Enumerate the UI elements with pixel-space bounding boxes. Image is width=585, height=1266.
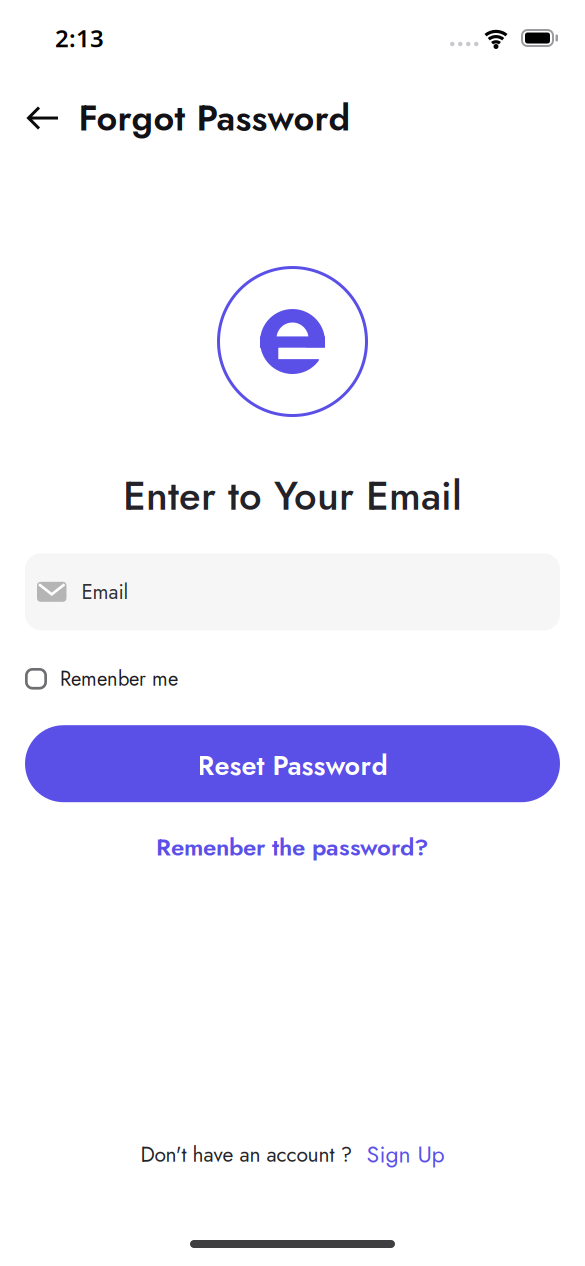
button[interactable]: Remenber me xyxy=(25,668,47,690)
staticText: Remenber me xyxy=(60,664,178,693)
staticText: Remenber the password? xyxy=(156,830,429,864)
button[interactable]: Sign Up xyxy=(352,1138,444,1171)
staticText: 2:13 xyxy=(55,22,104,54)
button[interactable]: Remenber the password? xyxy=(156,830,429,864)
staticText: Forgot Password xyxy=(78,92,350,144)
button[interactable]: Reset Password xyxy=(0,725,585,802)
button[interactable]: Back xyxy=(0,105,58,131)
staticText: Don't have an account ? xyxy=(140,1139,352,1169)
staticText: Reset Password xyxy=(197,746,387,785)
staticText: Email xyxy=(81,577,128,607)
staticText: Sign Up xyxy=(366,1138,444,1171)
button[interactable]: Email xyxy=(0,553,585,630)
staticText: Enter to Your Email xyxy=(123,467,462,525)
